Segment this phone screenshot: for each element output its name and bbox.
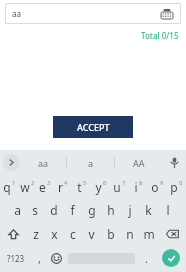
staticText: g [88, 202, 96, 218]
button[interactable]: s [26, 198, 44, 222]
staticText: k [145, 202, 152, 218]
staticText: i [134, 179, 138, 195]
button[interactable]: ACCEPT [53, 116, 133, 138]
staticText: d [50, 202, 58, 218]
staticText: p [170, 179, 178, 195]
button[interactable]: l [158, 198, 177, 222]
button[interactable]: x [45, 222, 63, 246]
staticText: a [14, 202, 21, 218]
button[interactable]: , [31, 246, 48, 270]
staticText: q [3, 179, 11, 195]
staticText: r [58, 179, 63, 195]
staticText: 8 [139, 179, 143, 187]
button[interactable]: Shift [0, 222, 27, 246]
staticText: e [39, 179, 46, 195]
staticText: l [166, 202, 170, 218]
button[interactable]: Emoji [48, 246, 65, 270]
button[interactable]: h [101, 198, 120, 222]
button[interactable]: w [18, 175, 36, 198]
staticText: AA [133, 157, 145, 169]
staticText: 3 [47, 179, 51, 187]
button[interactable]: z [27, 222, 45, 246]
button[interactable]: q [0, 175, 18, 198]
staticText: ACCEPT [77, 121, 110, 133]
button[interactable]: ?123 [0, 246, 31, 270]
button[interactable]: u [110, 175, 129, 198]
button[interactable]: v [82, 222, 101, 246]
staticText: t [77, 179, 82, 195]
button[interactable]: a [8, 198, 26, 222]
staticText: Total 0/15 [141, 30, 179, 41]
staticText: v [88, 226, 95, 242]
button[interactable]: b [101, 222, 120, 246]
button[interactable]: c [63, 222, 82, 246]
button[interactable]: aa [5, 3, 181, 24]
staticText: n [126, 226, 134, 242]
button[interactable]: i [129, 175, 148, 198]
staticText: z [33, 226, 39, 242]
staticText: s [32, 202, 38, 218]
button[interactable]: r [54, 175, 72, 198]
button[interactable]: n [120, 222, 139, 246]
staticText: 2 [31, 179, 35, 187]
staticText: 5 [83, 179, 87, 187]
button[interactable]: m [139, 222, 158, 246]
button[interactable]: d [44, 198, 63, 222]
button[interactable]: Enter [155, 246, 186, 270]
button[interactable]: y [91, 175, 110, 198]
button[interactable]: k [139, 198, 158, 222]
staticText: 1 [12, 179, 16, 187]
staticText: ?123 [7, 253, 25, 264]
staticText: a [88, 157, 94, 169]
button[interactable]: o [148, 175, 167, 198]
staticText: 0 [179, 179, 183, 187]
button[interactable]: f [63, 198, 82, 222]
staticText: 4 [64, 179, 68, 187]
staticText: . [145, 251, 148, 266]
staticText: m [143, 226, 155, 242]
button[interactable]: AA [115, 150, 162, 175]
button[interactable]: aa [20, 150, 66, 175]
staticText: 9 [160, 179, 164, 187]
staticText: j [128, 202, 132, 218]
button[interactable]: Backspace [158, 222, 186, 246]
staticText: 7 [122, 179, 126, 187]
button[interactable]: p [167, 175, 186, 198]
staticText: c [70, 226, 76, 242]
button[interactable]: . [138, 246, 155, 270]
button[interactable]: e [36, 175, 54, 198]
staticText: o [151, 179, 159, 195]
staticText: aa [38, 157, 49, 169]
button[interactable]: g [82, 198, 101, 222]
button[interactable]: Expand toolbar [3, 154, 20, 171]
button[interactable]: j [120, 198, 139, 222]
staticText: b [107, 226, 115, 242]
staticText: x [51, 226, 58, 242]
staticText: , [38, 251, 41, 266]
button[interactable]: a [67, 150, 114, 175]
staticText: h [107, 202, 115, 218]
staticText: f [70, 202, 75, 218]
staticText: aa [12, 8, 21, 19]
button[interactable]: Voice input [162, 150, 186, 175]
staticText: u [113, 179, 121, 195]
button[interactable]: t [72, 175, 91, 198]
button[interactable]: Keypad [160, 7, 174, 21]
staticText: 6 [103, 179, 107, 187]
staticText: y [95, 179, 102, 195]
staticText: w [20, 179, 30, 195]
